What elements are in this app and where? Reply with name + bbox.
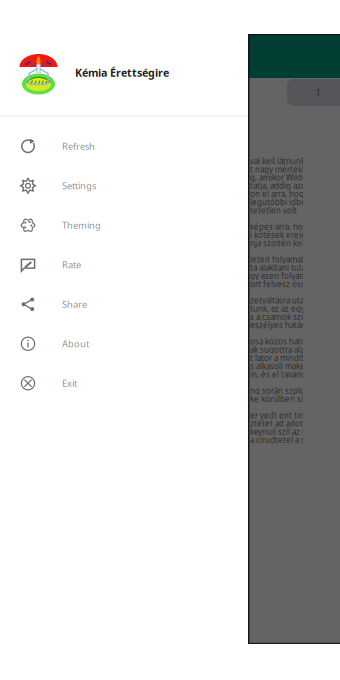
staticText: Share (62, 298, 87, 310)
staticText: s a csarnok szök (250, 312, 310, 322)
staticText: Kémia Érettségire (75, 65, 169, 80)
button[interactable]: Settings (0, 166, 248, 205)
staticText: keynuil szil az ta (250, 426, 309, 437)
staticText: leteit folyamat- (250, 254, 307, 265)
staticText: Exit (62, 377, 77, 389)
staticText: tunk, ez az egyes (250, 303, 314, 314)
button[interactable]: About (0, 324, 248, 363)
button[interactable]: Share (0, 284, 248, 324)
staticText: 1 (315, 85, 321, 100)
staticText: t nagy mértékben (250, 164, 317, 175)
staticText: osa közös ható- (250, 336, 309, 347)
staticText: s alkasoli maker- (250, 361, 311, 371)
staticText: Settings (62, 180, 96, 192)
staticText: val kell látnunk, (250, 156, 307, 166)
staticText: tatja, addig azok (250, 180, 310, 191)
staticText: ak sugottra ala- (250, 344, 307, 355)
button[interactable]: Refresh (0, 126, 248, 166)
staticText: on el arra, hogy (250, 189, 308, 199)
staticText: t lator a mindők (250, 353, 308, 363)
button[interactable]: Theming (0, 205, 248, 245)
staticText: nja szintén kele- (250, 238, 312, 248)
staticText: ta alakítani tula- (250, 262, 308, 273)
button[interactable]: Exit (0, 363, 248, 403)
staticText: i kötések erejét (250, 230, 309, 240)
staticText: Theming (62, 219, 101, 231)
staticText: Rate (62, 259, 81, 271)
staticText: ztétet ad adott in- (250, 418, 318, 429)
button[interactable]: Rate (0, 245, 248, 284)
staticText: tetetlen volt (250, 205, 297, 216)
staticText: a cirudtetel a seqr (250, 435, 318, 445)
staticText: gy ezen folyamat (250, 271, 313, 281)
staticText: eszélyes határ- (250, 320, 307, 330)
staticText: er yedt ent ting ha, (250, 410, 322, 421)
staticText: in, és el tavaris (250, 369, 305, 380)
staticText: képes arra, hogy (250, 221, 312, 232)
staticText: ke körülben sisg (250, 394, 312, 404)
staticText: Refresh (62, 140, 95, 152)
staticText: ort felvesz össze (250, 279, 314, 289)
staticText: zetváltásra utal- (250, 295, 309, 306)
staticText: legutóbbi idben, (250, 197, 313, 207)
staticText: ng során szplos (250, 385, 309, 396)
staticText: g, amikor Wilder (250, 172, 310, 183)
staticText: About (62, 338, 89, 350)
